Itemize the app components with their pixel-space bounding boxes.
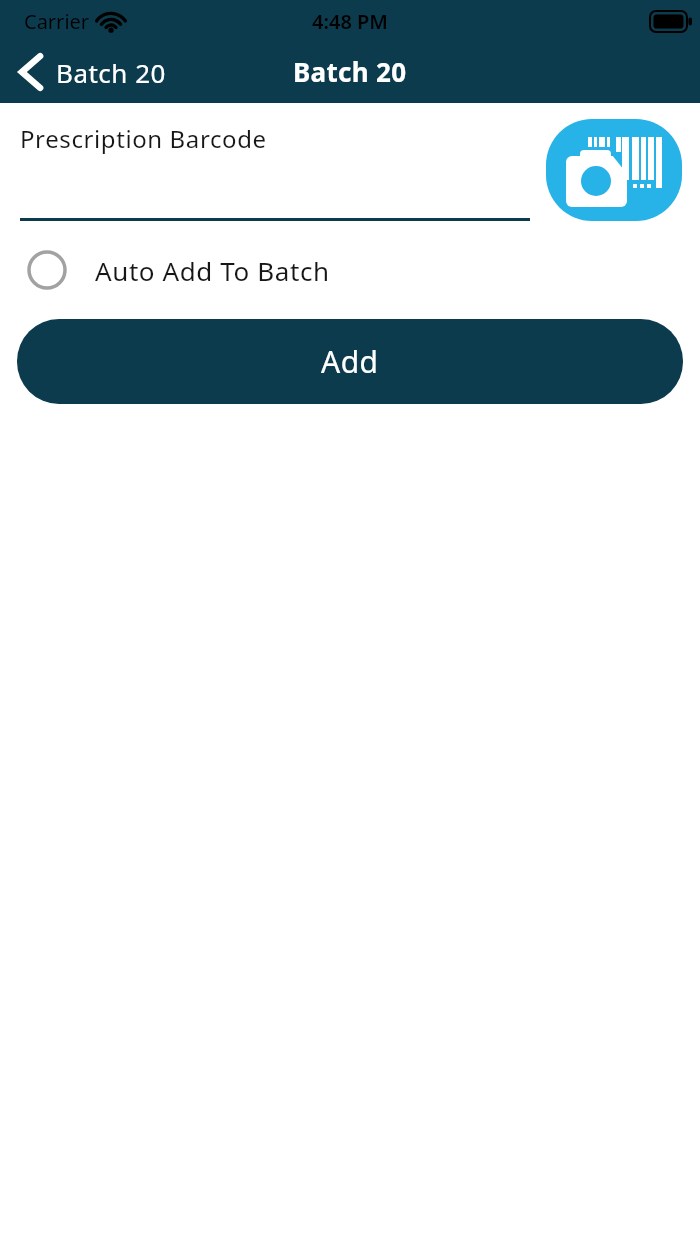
staticText: 4:48 PM bbox=[312, 8, 388, 35]
staticText: Batch 20 bbox=[293, 54, 407, 89]
button[interactable]: Add bbox=[17, 319, 683, 404]
staticText: Prescription Barcode bbox=[20, 122, 267, 155]
staticText: Carrier bbox=[24, 8, 90, 35]
button[interactable]: Auto Add To Batch bbox=[27, 250, 700, 290]
button[interactable] bbox=[546, 119, 682, 221]
button[interactable]: Batch 20 bbox=[19, 54, 166, 90]
staticText: Auto Add To Batch bbox=[95, 253, 330, 288]
staticText: Add bbox=[321, 341, 379, 382]
staticText: Batch 20 bbox=[56, 55, 166, 90]
